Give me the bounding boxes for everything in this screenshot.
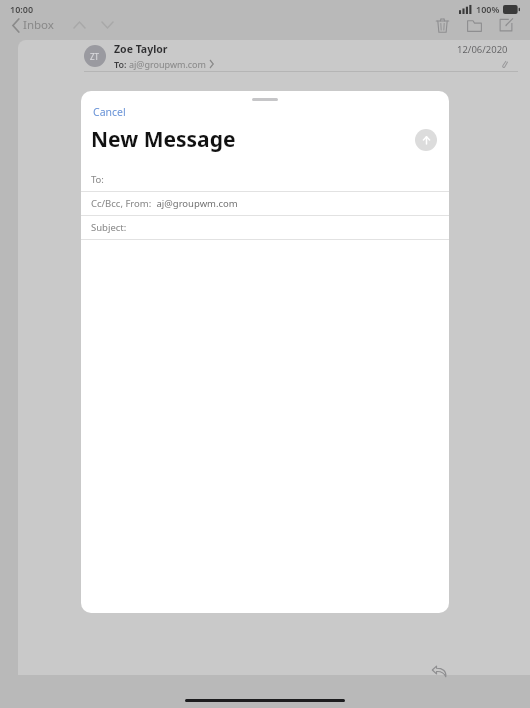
button[interactable]: Move to folder [462, 14, 486, 36]
staticText: 100% [476, 3, 500, 15]
staticText: To: [114, 58, 129, 70]
staticText: Zoe Taylor [114, 42, 168, 56]
button[interactable]: Subject: [81, 216, 449, 239]
staticText: To: [91, 173, 104, 186]
staticText: New Message [91, 125, 236, 154]
staticText: 12/06/2020 [457, 43, 508, 56]
staticText: 10:00 [10, 3, 34, 15]
staticText: Cancel [93, 105, 126, 119]
staticText: aj@groupwm.com [154, 197, 238, 210]
staticText: Cc/Bcc, From: [91, 197, 154, 210]
staticText: aj@groupwm.com [129, 58, 206, 70]
button[interactable]: Cc/Bcc, From: [81, 192, 449, 215]
button[interactable]: Reply [426, 657, 452, 683]
button[interactable]: Next message [98, 16, 116, 34]
staticText: ZT [90, 51, 100, 62]
button[interactable]: Delete [430, 14, 454, 36]
button[interactable]: Inbox [12, 17, 60, 33]
button[interactable]: Cancel [91, 103, 128, 121]
button[interactable]: Previous message [70, 16, 88, 34]
staticText: Inbox [23, 17, 54, 33]
button[interactable]: To: [81, 168, 449, 191]
staticText: Subject: [91, 221, 127, 234]
button[interactable]: Send [415, 129, 437, 151]
button[interactable]: Compose [494, 14, 518, 36]
